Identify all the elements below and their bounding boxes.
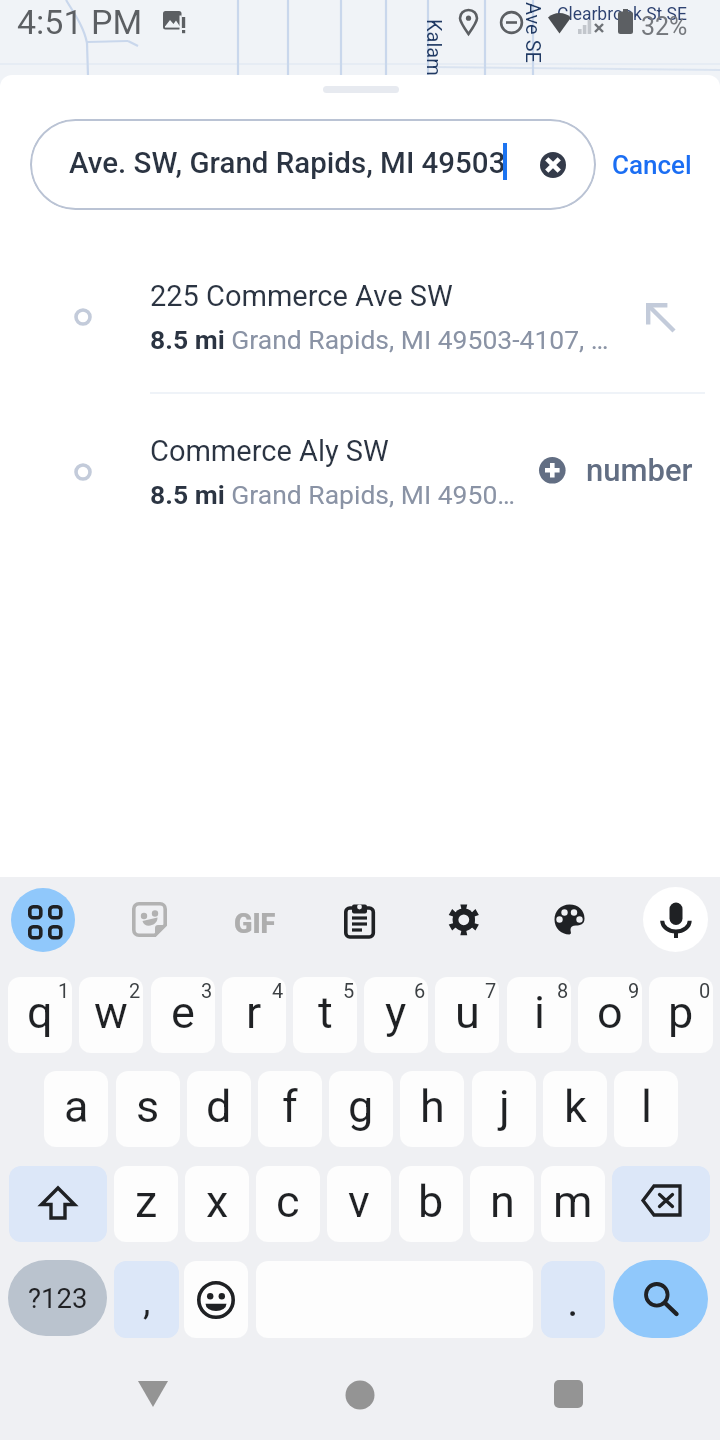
staticText: o: [597, 986, 623, 1039]
staticText: i: [534, 986, 545, 1039]
button[interactable]: n: [470, 1166, 534, 1242]
staticText: p: [668, 986, 694, 1039]
button[interactable]: k: [543, 1071, 607, 1147]
staticText: .: [567, 1275, 579, 1327]
staticText: t: [318, 986, 333, 1039]
staticText: u: [455, 986, 480, 1039]
staticText: f: [282, 1080, 298, 1133]
staticText: s: [136, 1080, 160, 1133]
staticText: 3: [201, 979, 213, 1002]
staticText: Ave. SW, Grand Rapids, MI 49503: [69, 146, 506, 181]
staticText: r: [246, 986, 262, 1039]
staticText: ?123: [28, 1282, 88, 1314]
button[interactable]: c: [256, 1166, 320, 1242]
button[interactable]: Cancel: [600, 119, 704, 210]
staticText: z: [135, 1175, 158, 1228]
button[interactable]: l: [614, 1071, 678, 1147]
button[interactable]: number: [525, 437, 705, 503]
button[interactable]: t: [293, 977, 357, 1053]
staticText: 4: [272, 979, 284, 1002]
button[interactable]: Stickers: [132, 902, 167, 937]
staticText: x: [206, 1175, 229, 1228]
button[interactable]: Shift: [9, 1166, 107, 1242]
button[interactable]: Ave. SW, Grand Rapids, MI 49503: [30, 119, 596, 210]
staticText: c: [276, 1175, 300, 1228]
staticText: 2: [129, 979, 141, 1002]
button[interactable]: y: [364, 977, 428, 1053]
button[interactable]: u: [435, 977, 499, 1053]
button[interactable]: Clipboard: [344, 902, 375, 933]
button[interactable]: p: [649, 977, 713, 1053]
staticText: k: [564, 1080, 587, 1133]
staticText: d: [206, 1080, 232, 1133]
button[interactable]: o: [578, 977, 642, 1053]
staticText: number: [586, 452, 693, 488]
staticText: n: [490, 1175, 515, 1228]
staticText: Cancel: [612, 150, 692, 180]
button[interactable]: ?123: [8, 1260, 107, 1336]
button[interactable]: f: [258, 1071, 322, 1147]
button[interactable]: j: [472, 1071, 536, 1147]
staticText: 32%: [641, 12, 688, 41]
staticText: Ave SE: [522, 2, 545, 63]
staticText: 9: [628, 979, 640, 1002]
button[interactable]: z: [114, 1166, 178, 1242]
staticText: 8.5 mi Grand Rapids, MI 4950…: [150, 479, 516, 510]
staticText: 225 Commerce Ave SW: [150, 279, 453, 313]
staticText: v: [348, 1175, 370, 1228]
button[interactable]: a: [44, 1071, 108, 1147]
staticText: y: [385, 986, 407, 1039]
staticText: 8: [557, 979, 569, 1002]
button[interactable]: r: [222, 977, 286, 1053]
staticText: 5: [343, 979, 355, 1002]
staticText: 4:51 PM: [17, 2, 143, 42]
button[interactable]: b: [399, 1166, 463, 1242]
button[interactable]: Backspace: [612, 1166, 710, 1242]
button[interactable]: ,: [114, 1261, 179, 1338]
button[interactable]: Keyboard modes: [11, 888, 75, 952]
button[interactable]: g: [329, 1071, 393, 1147]
button[interactable]: v: [327, 1166, 391, 1242]
staticText: h: [420, 1080, 445, 1133]
staticText: q: [27, 986, 53, 1039]
staticText: e: [171, 986, 195, 1039]
staticText: 8.5 mi Grand Rapids, MI 49503-4107, …: [150, 324, 609, 355]
staticText: Kalam: [423, 19, 446, 76]
staticText: l: [641, 1080, 652, 1133]
staticText: a: [64, 1080, 89, 1133]
button[interactable]: h: [400, 1071, 464, 1147]
button[interactable]: q: [8, 977, 72, 1053]
staticText: j: [499, 1080, 510, 1133]
staticText: 7: [485, 979, 497, 1002]
staticText: Commerce Aly SW: [150, 434, 389, 468]
button[interactable]: w: [79, 977, 143, 1053]
button[interactable]: Settings: [448, 904, 480, 936]
button[interactable]: Themes: [554, 904, 585, 935]
staticText: ,: [143, 1279, 151, 1324]
button[interactable]: GIF: [228, 897, 282, 951]
staticText: g: [348, 1080, 374, 1133]
button[interactable]: Emoji: [184, 1261, 248, 1338]
staticText: GIF: [234, 908, 276, 940]
button[interactable]: x: [185, 1166, 249, 1242]
staticText: 0: [699, 979, 711, 1002]
button[interactable]: Voice input: [643, 887, 708, 952]
button[interactable]: s: [116, 1071, 180, 1147]
staticText: m: [553, 1175, 593, 1228]
button[interactable]: Home: [330, 1365, 390, 1425]
button[interactable]: 225 Commerce Ave SW: [0, 254, 720, 409]
button[interactable]: i: [507, 977, 571, 1053]
button[interactable]: m: [541, 1166, 605, 1242]
button[interactable]: Back: [123, 1364, 183, 1424]
button[interactable]: Commerce Aly SW: [0, 409, 720, 564]
staticText: 1: [58, 979, 70, 1002]
button[interactable]: d: [187, 1071, 251, 1147]
button[interactable]: Clear text: [526, 138, 579, 191]
button[interactable]: e: [151, 977, 215, 1053]
button[interactable]: Recent apps: [538, 1364, 598, 1424]
button[interactable]: .: [541, 1261, 605, 1338]
button[interactable]: Use this suggestion: [622, 282, 696, 356]
button[interactable]: Search: [613, 1260, 708, 1338]
staticText: Clearbrook St SE: [557, 4, 687, 25]
